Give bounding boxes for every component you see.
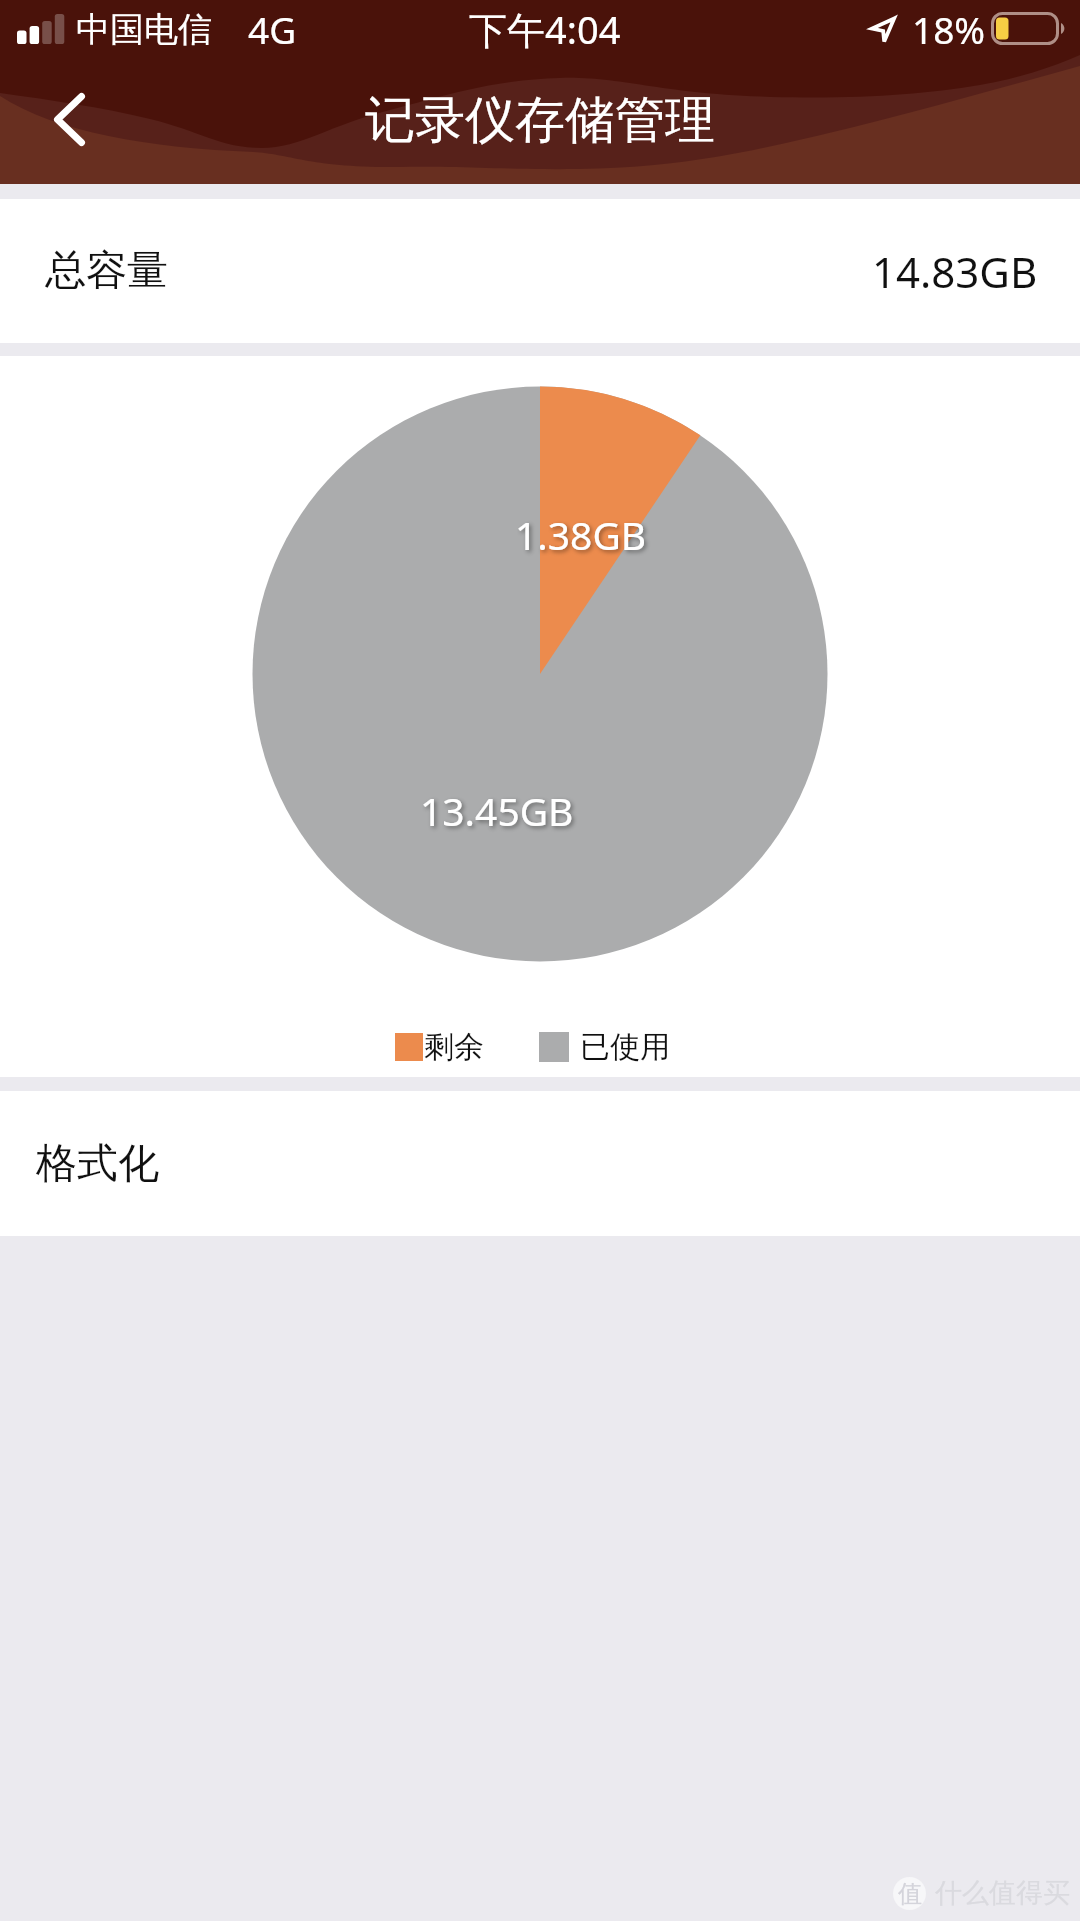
button[interactable]: 格式化 <box>0 1091 1080 1236</box>
staticText: 记录仪存储管理 <box>365 89 715 152</box>
staticText: 值 <box>898 1879 922 1909</box>
button[interactable]: Back <box>0 60 130 184</box>
staticText: 下午4:04 <box>469 3 621 55</box>
staticText: 什么值得买 <box>935 1876 1070 1910</box>
staticText: 已使用 <box>580 1028 670 1066</box>
staticText: 格式化 <box>36 1138 159 1190</box>
staticText: 18% <box>912 4 986 54</box>
staticText: 剩余 <box>424 1028 484 1066</box>
staticText: 4G <box>248 4 297 54</box>
staticText: 总容量 <box>45 245 168 297</box>
button[interactable]: 总容量 <box>0 199 1080 343</box>
staticText: 1.38GB <box>515 508 647 561</box>
staticText: 中国电信 <box>76 8 212 51</box>
staticText: 13.45GB <box>420 784 574 837</box>
staticText: 14.83GB <box>872 243 1038 300</box>
